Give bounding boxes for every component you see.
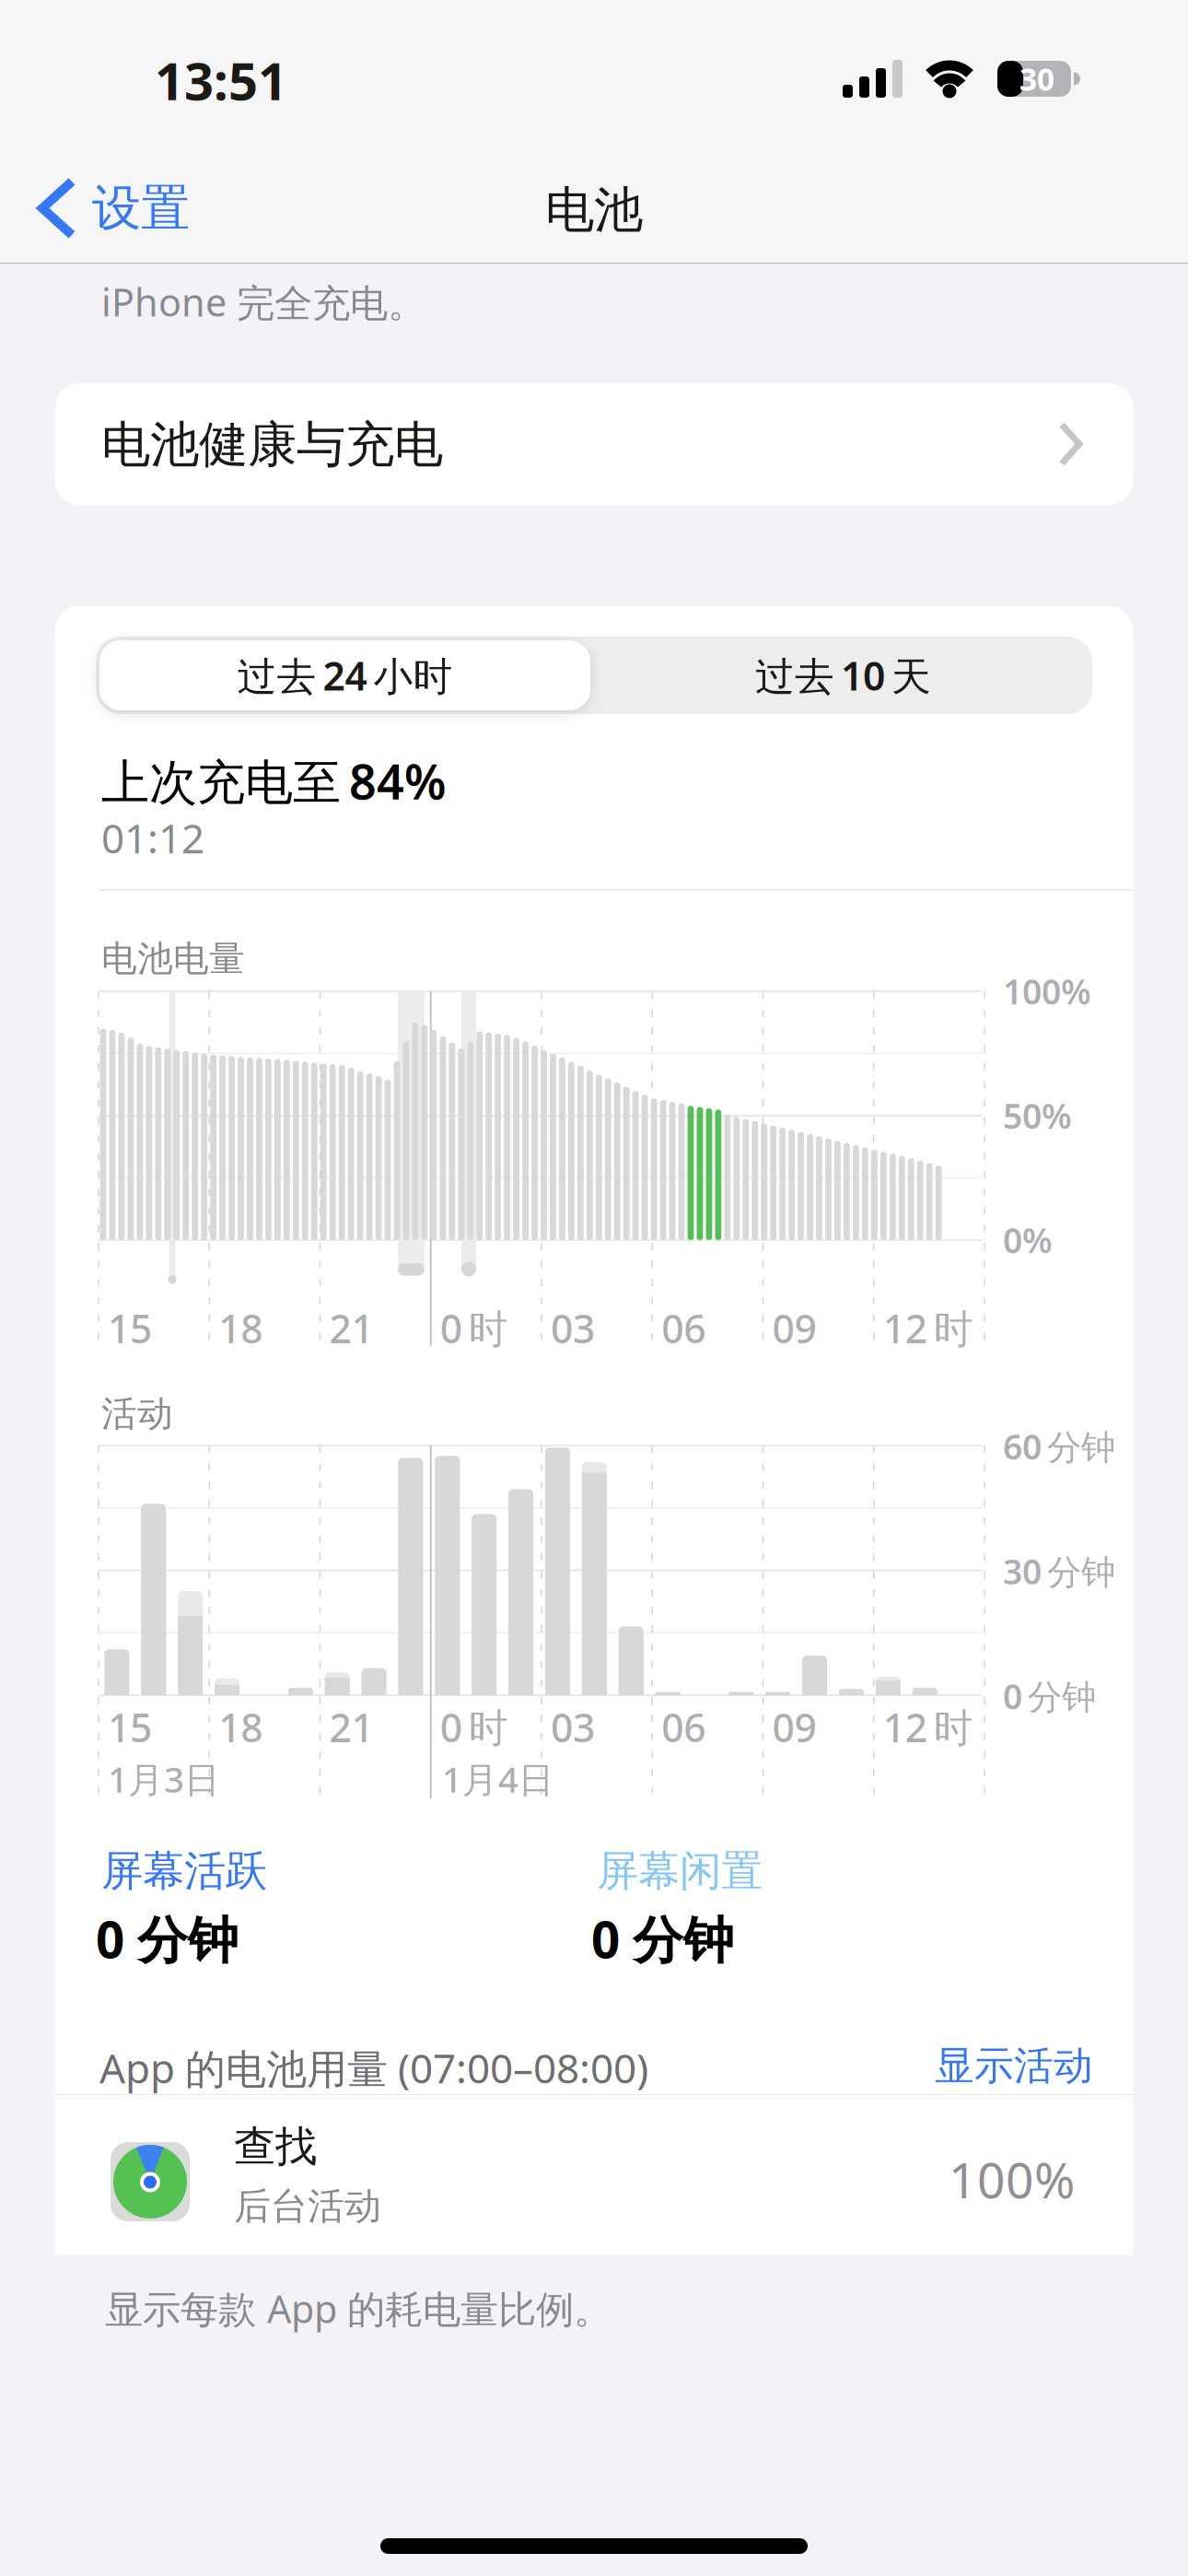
staticText: 09 <box>772 1302 816 1354</box>
staticText: 0 分钟 <box>96 1905 239 1972</box>
staticText: 15 <box>108 1302 152 1354</box>
staticText: 50% <box>1003 1093 1072 1138</box>
staticText: 活动 <box>101 1392 173 1436</box>
staticText: 30 分钟 <box>1003 1548 1115 1594</box>
staticText: 21 <box>329 1701 373 1753</box>
staticText: 屏幕活跃 <box>101 1845 267 1897</box>
staticText: 21 <box>329 1302 373 1354</box>
staticText: 后台活动 <box>234 2184 381 2229</box>
staticText: 06 <box>661 1302 706 1354</box>
staticText: 18 <box>218 1302 263 1354</box>
staticText: 电池电量 <box>101 937 245 981</box>
staticText: 0% <box>1003 1217 1053 1263</box>
staticText: 06 <box>661 1701 706 1753</box>
staticText: App 的电池用量 (07:00–08:00) <box>99 2041 648 2095</box>
staticText: 03 <box>551 1701 595 1753</box>
staticText: 过去 10 天 <box>755 649 931 701</box>
staticText: 13:51 <box>155 46 287 114</box>
button[interactable]: 过去 24 小时 <box>99 640 590 710</box>
staticText: 上次充电至 84% <box>101 749 447 813</box>
staticText: 60 分钟 <box>1003 1423 1115 1469</box>
staticText: 过去 24 小时 <box>237 649 453 701</box>
button[interactable]: 查找 <box>55 2095 1133 2255</box>
staticText: 18 <box>218 1701 263 1753</box>
staticText: 显示活动 <box>935 2042 1093 2090</box>
staticText: 100% <box>949 2147 1075 2212</box>
staticText: 12 时 <box>883 1302 973 1354</box>
staticText: 0 时 <box>440 1302 508 1354</box>
staticText: 0 时 <box>440 1701 508 1753</box>
staticText: 屏幕闲置 <box>597 1845 763 1897</box>
staticText: 30 <box>1019 58 1054 99</box>
staticText: 100% <box>1003 968 1091 1014</box>
button[interactable]: 电池健康与充电 <box>55 383 1133 505</box>
staticText: 09 <box>772 1701 816 1753</box>
staticText: 电池健康与充电 <box>101 415 443 475</box>
staticText: 0 分钟 <box>591 1905 734 1972</box>
staticText: 电池 <box>545 180 643 240</box>
staticText: 查找 <box>234 2121 317 2172</box>
staticText: 1月3日 <box>108 1755 220 1802</box>
staticText: 03 <box>551 1302 595 1354</box>
button[interactable]: 显示活动 <box>725 2042 1093 2090</box>
button[interactable]: 过去 10 天 <box>598 640 1089 710</box>
staticText: 0 分钟 <box>1003 1673 1096 1719</box>
staticText: iPhone 完全充电。 <box>101 276 425 327</box>
button[interactable]: 返回设置 <box>33 177 190 240</box>
staticText: 12 时 <box>883 1701 973 1753</box>
staticText: 01:12 <box>101 811 204 865</box>
staticText: 15 <box>108 1701 152 1753</box>
staticText: 显示每款 App 的耗电量比例。 <box>105 2283 611 2334</box>
staticText: 设置 <box>92 178 190 238</box>
staticText: 1月4日 <box>442 1755 554 1802</box>
